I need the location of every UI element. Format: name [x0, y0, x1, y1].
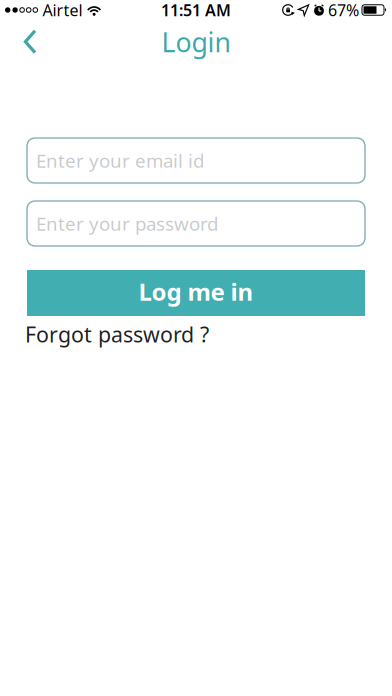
- button[interactable]: Log me in: [27, 270, 365, 316]
- staticText: Login: [161, 24, 230, 60]
- staticText: Log me in: [138, 276, 253, 307]
- staticText: Enter your password: [36, 211, 218, 236]
- button[interactable]: Enter your email id: [27, 138, 365, 183]
- button[interactable]: Enter your password: [27, 201, 365, 246]
- staticText: Enter your email id: [36, 148, 204, 173]
- staticText: 67%: [328, 0, 359, 21]
- staticText: Forgot password ?: [25, 320, 209, 348]
- button[interactable]: Back: [0, 22, 48, 62]
- staticText: 11:51 AM: [161, 0, 231, 21]
- button[interactable]: Forgot password ?: [25, 320, 209, 348]
- staticText: Airtel: [43, 0, 83, 21]
